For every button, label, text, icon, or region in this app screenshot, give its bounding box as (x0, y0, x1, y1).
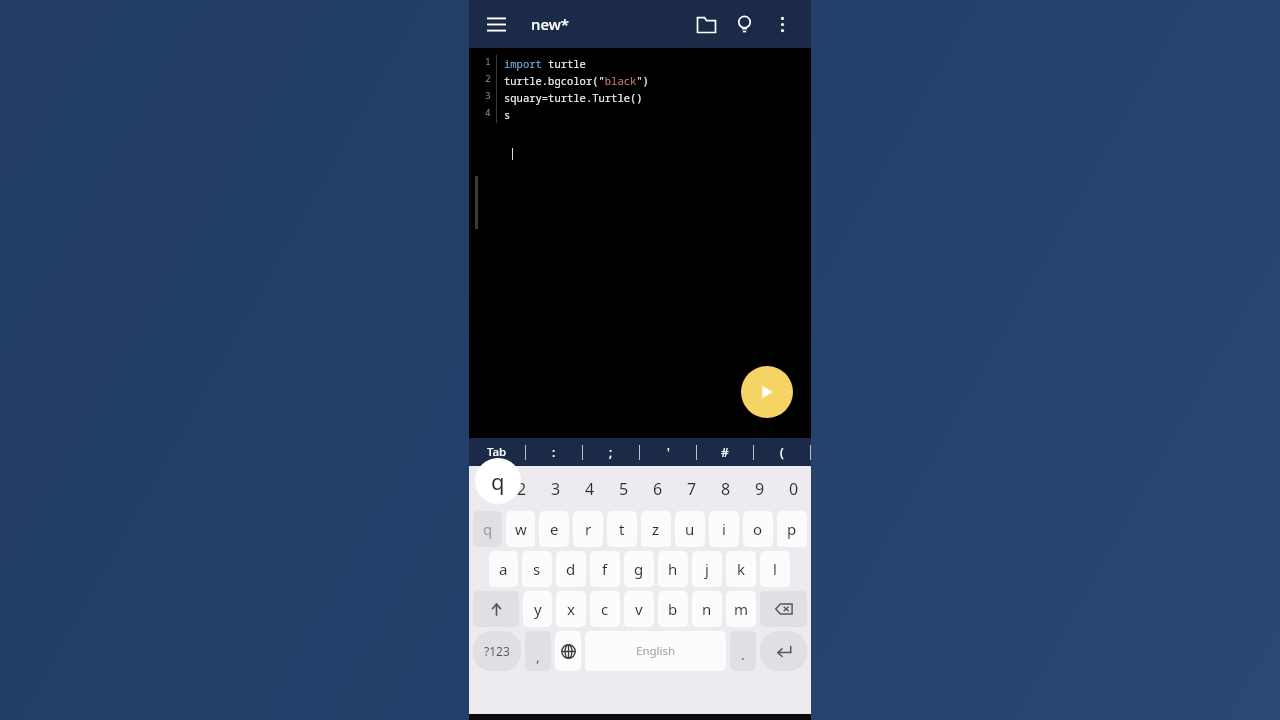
button[interactable]: u (675, 511, 705, 547)
staticText: a (499, 559, 508, 579)
button[interactable]: f (590, 551, 620, 587)
staticText: p (787, 519, 797, 539)
staticText: q (491, 466, 505, 496)
button[interactable]: g (624, 551, 654, 587)
button[interactable]: Run (741, 366, 793, 418)
button[interactable]: 6 (641, 469, 675, 509)
button[interactable]: # (697, 438, 753, 466)
staticText: turtle.bgcolor("black") (504, 74, 649, 88)
button[interactable]: b (658, 591, 688, 627)
staticText: 8 (721, 478, 731, 500)
button[interactable]: j (692, 551, 722, 587)
button[interactable]: 8 (709, 469, 743, 509)
button[interactable]: c (590, 591, 620, 627)
button[interactable]: t (607, 511, 637, 547)
button[interactable]: Hints (725, 5, 763, 43)
staticText: 4 (485, 106, 491, 119)
button[interactable]: q (473, 511, 502, 547)
button[interactable]: 5 (607, 469, 641, 509)
staticText: # (721, 444, 729, 460)
staticText: squary=turtle.Turtle() (504, 91, 643, 105)
button[interactable]: Open file browser (687, 5, 725, 43)
staticText: s (504, 108, 511, 122)
staticText: j (705, 559, 709, 579)
staticText: 1 (485, 55, 491, 68)
button[interactable]: More options (763, 5, 801, 43)
button[interactable]: a (489, 551, 518, 587)
button[interactable]: d (556, 551, 586, 587)
staticText: 6 (653, 478, 663, 500)
button[interactable]: : (526, 438, 582, 466)
button[interactable]: 0 (777, 469, 811, 509)
staticText: 3 (485, 89, 491, 102)
staticText: n (702, 599, 712, 619)
staticText: q (483, 519, 493, 539)
button[interactable]: p (777, 511, 807, 547)
staticText: o (753, 519, 763, 539)
staticText: l (773, 559, 777, 579)
button[interactable]: q (469, 469, 504, 509)
staticText: 2 (517, 478, 527, 500)
button[interactable]: k (726, 551, 756, 587)
button[interactable]: m (726, 591, 756, 627)
button[interactable]: y (523, 591, 552, 627)
staticText: 0 (789, 478, 799, 500)
staticText: h (668, 559, 678, 579)
staticText: z (652, 519, 660, 539)
staticText: English (636, 643, 676, 659)
staticText: s (533, 559, 541, 579)
staticText: f (602, 559, 608, 579)
button[interactable]: 3 (539, 469, 573, 509)
button[interactable]: ; (583, 438, 639, 466)
staticText: t (619, 519, 625, 539)
button[interactable]: English (585, 631, 726, 671)
button[interactable]: ?123 (473, 631, 521, 671)
button[interactable]: Tab (469, 438, 525, 466)
button[interactable]: 9 (743, 469, 777, 509)
staticText: r (585, 519, 592, 539)
button[interactable]: e (539, 511, 569, 547)
staticText: v (635, 599, 643, 619)
staticText: import turtle (504, 57, 586, 71)
staticText: i (722, 519, 726, 539)
staticText: 3 (551, 478, 561, 500)
staticText: y (534, 599, 542, 619)
staticText: : (552, 444, 556, 460)
button[interactable]: s (522, 551, 552, 587)
button[interactable]: x (556, 591, 586, 627)
staticText: 4 (585, 478, 595, 500)
button[interactable]: , (525, 631, 551, 671)
button[interactable]: Enter (760, 631, 807, 671)
button[interactable]: ( (754, 438, 810, 466)
button[interactable]: r (573, 511, 603, 547)
button[interactable]: n (692, 591, 722, 627)
button[interactable]: 7 (675, 469, 709, 509)
button[interactable]: Backspace (760, 591, 807, 627)
button[interactable]: 4 (573, 469, 607, 509)
button[interactable]: Shift (473, 591, 519, 627)
staticText: c (601, 599, 609, 619)
staticText: ?123 (484, 643, 510, 659)
staticText: e (550, 519, 559, 539)
staticText: 7 (687, 478, 697, 500)
button[interactable]: o (743, 511, 773, 547)
button[interactable]: 2 (504, 469, 539, 509)
button[interactable]: Change keyboard language (555, 631, 581, 671)
button[interactable]: l (760, 551, 790, 587)
button[interactable]: z (641, 511, 671, 547)
staticText: . (741, 645, 745, 664)
button[interactable]: . (730, 631, 756, 671)
button[interactable]: i (709, 511, 739, 547)
staticText: , (536, 647, 540, 666)
button[interactable]: h (658, 551, 688, 587)
button[interactable]: w (506, 511, 535, 547)
staticText: m (734, 599, 749, 619)
staticText: u (685, 519, 695, 539)
button[interactable]: Open navigation menu (479, 7, 513, 41)
button[interactable]: ' (640, 438, 696, 466)
button[interactable]: v (624, 591, 654, 627)
staticText: 9 (755, 478, 765, 500)
staticText: x (567, 599, 575, 619)
staticText: ' (667, 444, 670, 460)
